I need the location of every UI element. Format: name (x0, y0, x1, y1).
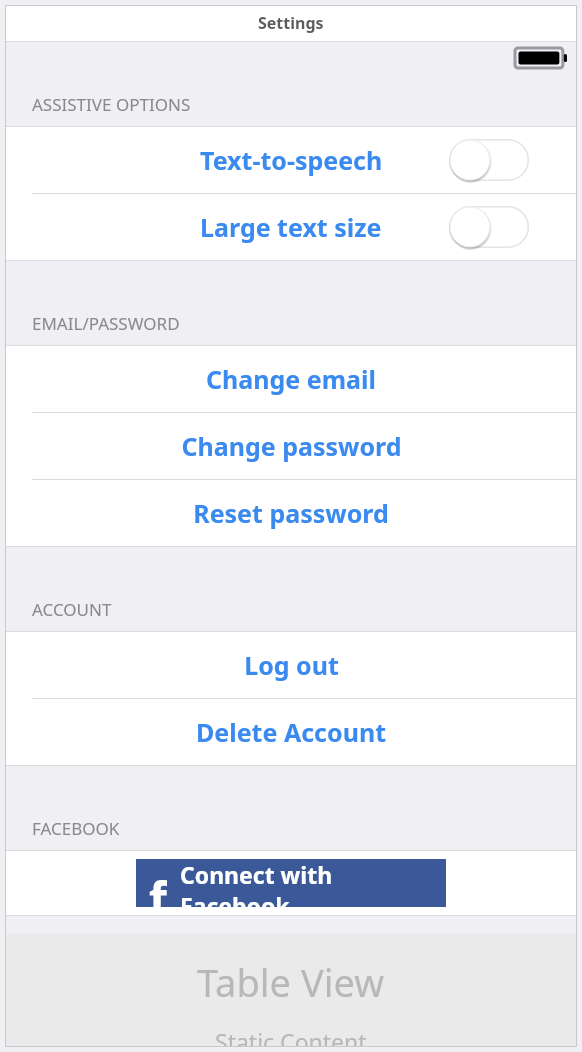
button[interactable]: Large text size (5, 194, 577, 260)
button[interactable]: Log out (5, 632, 577, 698)
staticText: Delete Account (196, 715, 386, 749)
staticText: Change password (181, 429, 402, 463)
staticText: FACEBOOK (32, 817, 120, 840)
staticText: ASSISTIVE OPTIONS (32, 93, 191, 116)
staticText: Static Content (215, 1026, 367, 1047)
staticText: ACCOUNT (32, 598, 112, 621)
staticText: Settings (258, 12, 324, 34)
staticText: Table View (197, 956, 385, 1008)
staticText: Reset password (193, 496, 389, 530)
other: Battery full (515, 48, 567, 68)
button[interactable]: Text-to-speech (5, 127, 577, 193)
button[interactable]: Change password (5, 413, 577, 479)
staticText: Log out (244, 648, 339, 682)
button[interactable]: Delete Account (5, 699, 577, 765)
staticText: f (149, 867, 167, 915)
staticText: Text-to-speech (200, 143, 383, 177)
staticText: Large text size (200, 210, 382, 244)
staticText: Change email (206, 362, 376, 396)
button[interactable]: Change email (5, 346, 577, 412)
staticText: EMAIL/PASSWORD (32, 312, 180, 335)
button[interactable]: f (136, 859, 446, 907)
button[interactable]: Reset password (5, 480, 577, 546)
staticText: Connect with Facebook (180, 859, 446, 907)
